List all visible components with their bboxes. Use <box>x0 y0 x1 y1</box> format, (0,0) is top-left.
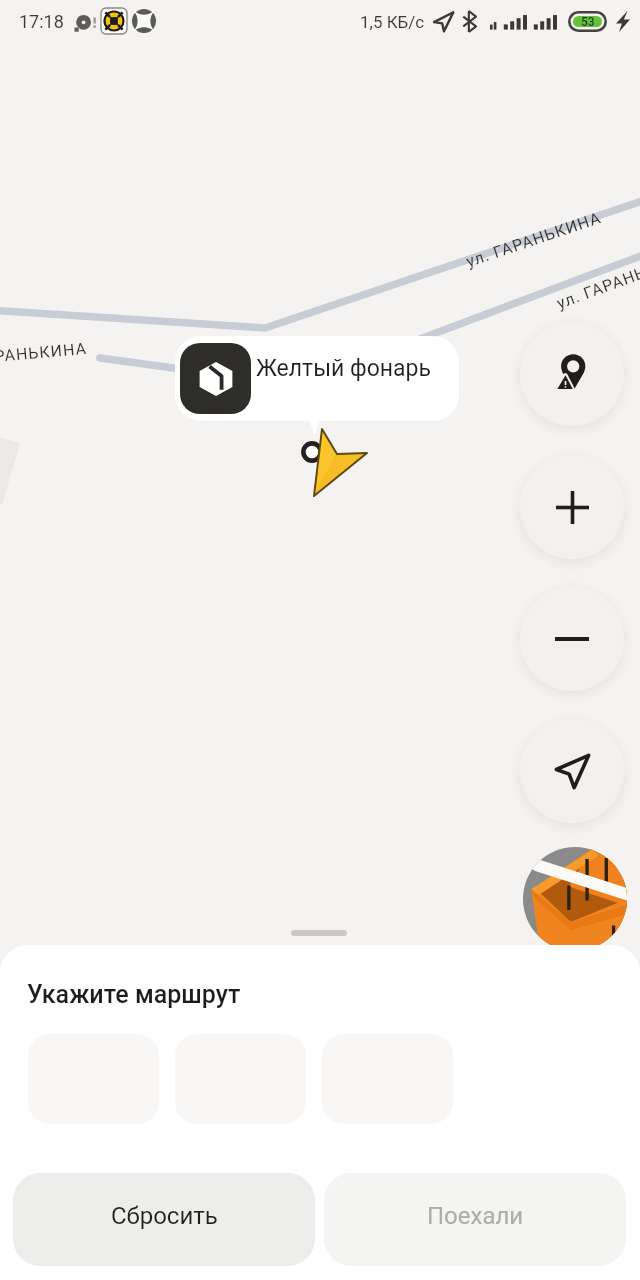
button[interactable]: My location <box>520 719 624 823</box>
button[interactable]: Желтый фонарь <box>175 336 459 421</box>
staticText: ул. ГАРАНЬКИНА <box>0 339 88 370</box>
button[interactable]: Zoom out <box>520 587 624 691</box>
button[interactable]: Поехали <box>324 1173 626 1266</box>
staticText: 17:18 <box>19 11 64 32</box>
staticText: 53 <box>581 15 595 29</box>
button[interactable]: Report incident <box>520 322 624 426</box>
staticText: Сбросить <box>111 1202 218 1230</box>
staticText: Укажите маршрут <box>27 980 241 1009</box>
staticText: ул. ГАРАНЬКИНА <box>464 208 604 271</box>
button[interactable]: Сбросить <box>13 1173 315 1266</box>
button[interactable]: Order basket <box>523 847 627 951</box>
button[interactable]: Zoom in <box>520 455 624 559</box>
staticText: Поехали <box>427 1202 524 1230</box>
staticText: ул. ГАРАНЬКИНА <box>554 246 640 313</box>
staticText: 1,5 КБ/с <box>360 12 425 32</box>
staticText: Желтый фонарь <box>256 355 431 382</box>
